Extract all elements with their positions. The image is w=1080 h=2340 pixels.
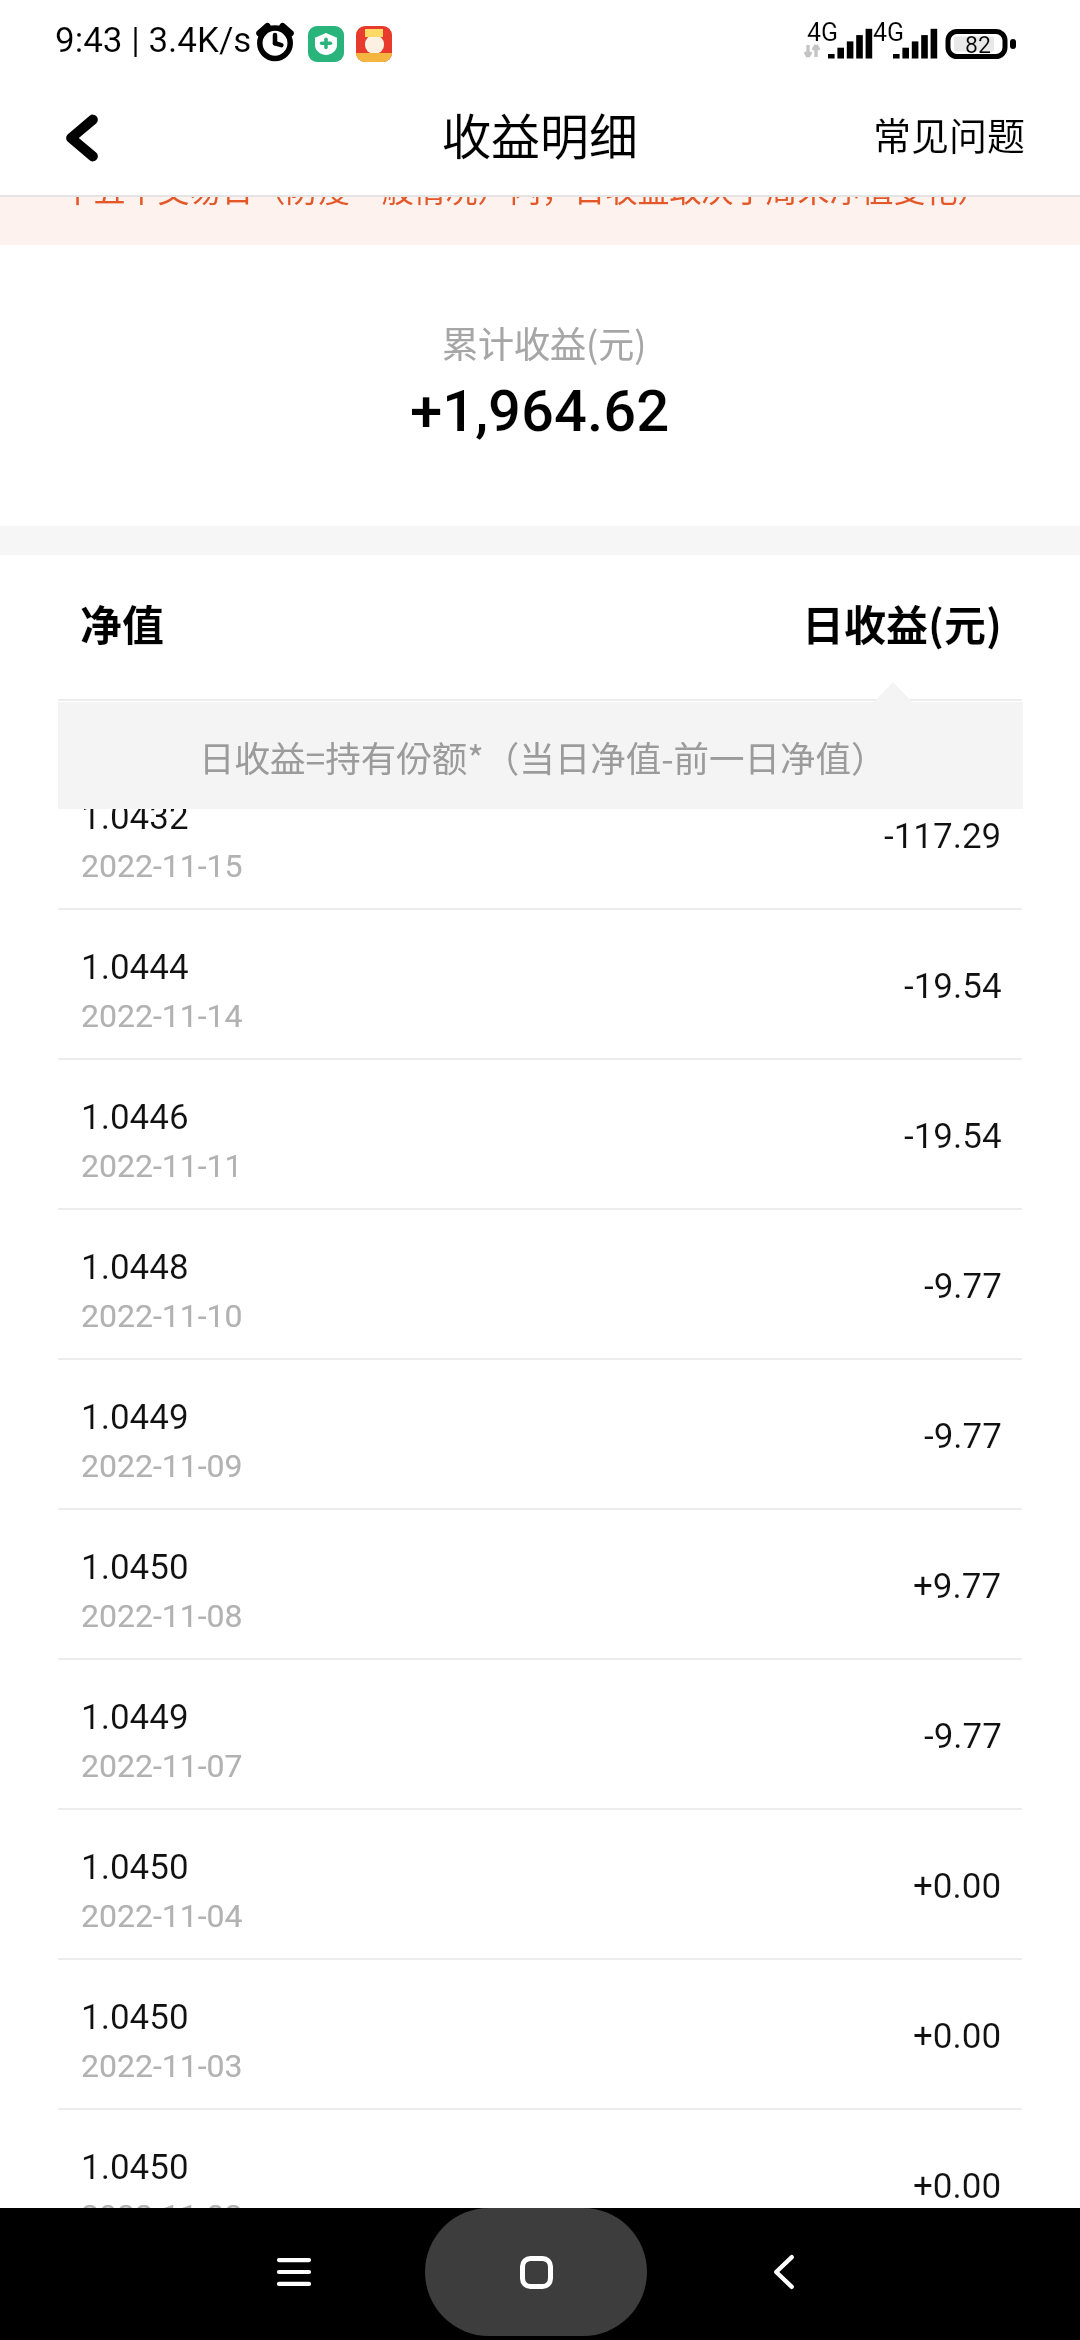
staticText: -9.77 <box>924 1716 1002 1757</box>
staticText: 2022-11-02 <box>81 2197 243 2208</box>
staticText: +1,964.62 <box>410 377 670 445</box>
staticText: 日收益(元) <box>802 592 1002 653</box>
staticText: 日收益=持有份额*（当日净值-前一日净值） <box>199 731 887 782</box>
staticText: 2022-11-10 <box>81 1297 243 1335</box>
staticText: 1.0450 <box>81 1547 189 1588</box>
button[interactable]: 1.0450 <box>0 1960 1080 2110</box>
staticText: 82 <box>965 32 991 59</box>
button[interactable]: 1.0450 <box>0 1810 1080 1960</box>
staticText: -19.54 <box>904 966 1002 1007</box>
staticText: 1.0444 <box>81 947 189 988</box>
staticText: 1.0449 <box>81 1697 189 1738</box>
staticText: 2022-11-14 <box>81 997 243 1035</box>
staticText: +9.77 <box>913 1566 1002 1607</box>
button[interactable]: 常见问题 <box>843 90 1080 195</box>
staticText: 净值 <box>80 592 165 653</box>
button[interactable]: 1.0444 <box>0 910 1080 1060</box>
staticText: 常见问题 <box>873 106 1026 161</box>
staticText: 1.0450 <box>81 1847 189 1888</box>
button[interactable]: 十五个交易日（防疫一般情况）内，日收益取决于周末净值变化） <box>0 197 1080 245</box>
button[interactable]: Recent apps <box>250 2228 338 2316</box>
button[interactable]: Home <box>425 2208 647 2336</box>
staticText: 2022-11-09 <box>81 1447 243 1485</box>
staticText: 1.0448 <box>81 1247 189 1288</box>
staticText: 4G <box>873 18 905 47</box>
staticText: 1.0446 <box>81 1097 189 1138</box>
staticText: -9.77 <box>924 1416 1002 1457</box>
staticText: 1.0450 <box>81 1997 189 2038</box>
staticText: 9:43 | 3.4K/s <box>55 20 252 61</box>
button[interactable]: Back <box>0 90 150 195</box>
button[interactable]: 1.0450 <box>0 1510 1080 1660</box>
staticText: 十五个交易日（防疫一般情况）内，日收益取决于周末净值变化） <box>61 197 990 211</box>
staticText: 2022-11-15 <box>81 847 243 885</box>
button[interactable]: 1.0450 <box>0 2110 1080 2208</box>
staticText: 2022-11-04 <box>81 1897 243 1935</box>
staticText: 1.0432 <box>81 797 189 838</box>
button[interactable]: 1.0449 <box>0 1660 1080 1810</box>
staticText: 2022-11-08 <box>81 1597 243 1635</box>
button[interactable]: 1.0446 <box>0 1060 1080 1210</box>
staticText: +0.00 <box>913 1866 1002 1907</box>
staticText: -19.54 <box>904 1116 1002 1157</box>
button[interactable]: 1.0448 <box>0 1210 1080 1360</box>
button[interactable]: 日收益=持有份额*（当日净值-前一日净值） <box>0 682 1080 809</box>
staticText: 收益明细 <box>442 98 639 169</box>
staticText: -117.29 <box>884 816 1002 857</box>
staticText: 1.0450 <box>81 2147 189 2188</box>
button[interactable]: Back <box>740 2228 828 2316</box>
button[interactable]: 1.0449 <box>0 1360 1080 1510</box>
staticText: 2022-11-11 <box>81 1147 243 1185</box>
staticText: 累计收益(元) <box>442 316 647 368</box>
staticText: -9.77 <box>924 1266 1002 1307</box>
button[interactable]: 1.0432 <box>0 760 1080 910</box>
staticText: 1.0449 <box>81 1397 189 1438</box>
staticText: 2022-11-03 <box>81 2047 243 2085</box>
staticText: 4G <box>807 18 839 47</box>
staticText: +0.00 <box>913 2016 1002 2057</box>
staticText: +0.00 <box>913 2166 1002 2207</box>
staticText: 2022-11-07 <box>81 1747 243 1785</box>
